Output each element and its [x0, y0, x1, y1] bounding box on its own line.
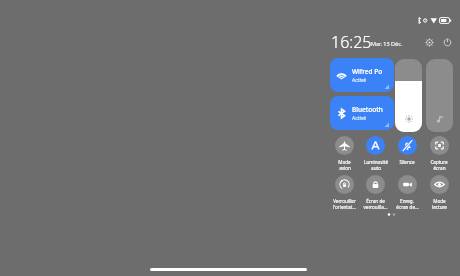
staticText: Bluetooth — [352, 105, 383, 114]
button[interactable]: Capture — [423, 136, 455, 171]
button[interactable]: Silence — [391, 136, 423, 165]
staticText: Mode — [433, 198, 446, 204]
staticText: Activé — [352, 77, 367, 84]
staticText: 16:25 — [331, 31, 372, 53]
staticText: écran de... — [396, 204, 419, 210]
button[interactable]: Enreg. — [391, 175, 423, 210]
button[interactable]: Luminosité — [395, 59, 422, 132]
staticText: auto — [371, 165, 381, 171]
staticText: avion — [339, 165, 351, 171]
button[interactable]: Wifred Po — [330, 58, 394, 92]
staticText: Verrouiller — [333, 198, 356, 204]
button[interactable]: Mode — [329, 136, 360, 171]
button[interactable]: Volume — [426, 59, 453, 132]
staticText: Enreg. — [400, 198, 414, 204]
staticText: Capture — [430, 159, 448, 165]
staticText: Écran de — [366, 198, 385, 204]
button[interactable]: Bluetooth — [330, 96, 394, 130]
staticText: Luminosité — [364, 159, 388, 165]
staticText: Silence — [399, 159, 415, 165]
staticText: lecture — [432, 204, 447, 210]
staticText: Wifred Po — [352, 67, 383, 76]
staticText: verrouilla... — [363, 204, 388, 210]
staticText: Mode — [338, 159, 351, 165]
button[interactable]: Écran de — [360, 175, 391, 210]
button[interactable]: Paramètres — [421, 34, 437, 50]
staticText: l'orientat... — [333, 204, 356, 210]
staticText: Activé — [352, 115, 367, 122]
staticText: Mar. 15 Déc. — [371, 40, 403, 47]
button[interactable]: Éteindre — [439, 34, 455, 50]
button[interactable]: Fermer le panneau — [0, 0, 460, 276]
button[interactable]: Luminosité — [360, 136, 391, 171]
button[interactable]: Mode — [423, 175, 455, 210]
button[interactable]: Verrouiller — [329, 175, 360, 210]
staticText: écran — [433, 165, 446, 171]
